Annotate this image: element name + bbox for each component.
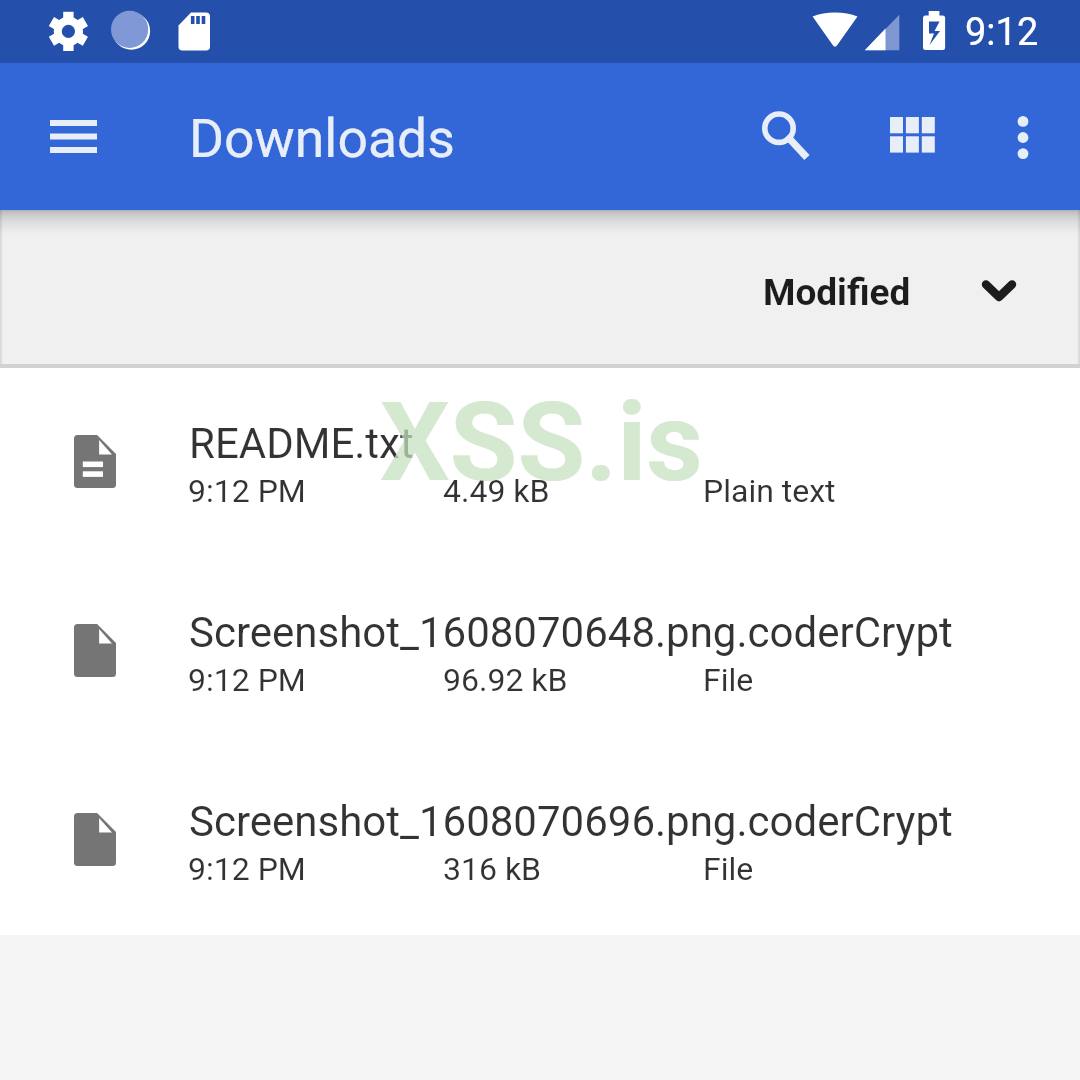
staticText: 316 kB <box>443 850 542 888</box>
staticText: 9:12 PM <box>188 850 306 888</box>
button[interactable]: Open navigation drawer <box>26 89 121 184</box>
staticText: XSS.is <box>380 378 703 507</box>
button[interactable]: README.txt <box>0 368 1080 557</box>
staticText: 4.49 kB <box>443 472 550 510</box>
button[interactable]: Modified <box>763 271 1016 314</box>
button[interactable]: Screenshot_1608070648.png.coderCrypt <box>0 557 1080 746</box>
staticText: Screenshot_1608070696.png.coderCrypt <box>189 797 953 846</box>
button[interactable]: Switch to grid view <box>865 87 960 182</box>
staticText: File <box>703 661 754 699</box>
staticText: README.txt <box>189 419 414 468</box>
staticText: 9:12 PM <box>188 661 306 699</box>
staticText: Modified <box>763 271 911 314</box>
button[interactable]: More options <box>975 90 1070 185</box>
staticText: 9:12 PM <box>188 472 306 510</box>
staticText: Plain text <box>703 472 836 510</box>
staticText: Screenshot_1608070648.png.coderCrypt <box>189 608 953 657</box>
button[interactable]: Search <box>737 87 832 182</box>
staticText: File <box>703 850 754 888</box>
staticText: 9:12 <box>965 10 1039 55</box>
staticText: 96.92 kB <box>443 661 568 699</box>
button[interactable]: Screenshot_1608070696.png.coderCrypt <box>0 746 1080 935</box>
staticText: Downloads <box>189 107 455 170</box>
